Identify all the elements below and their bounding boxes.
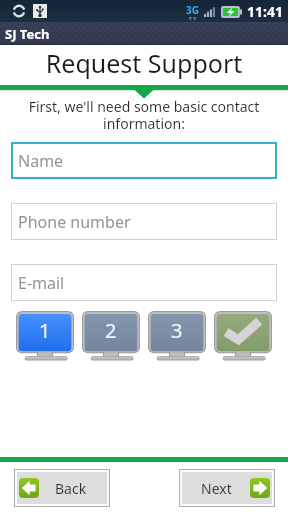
button[interactable]: Next [182,472,272,504]
button[interactable]: E-mail [11,264,277,301]
button[interactable]: Phone number [11,203,277,240]
staticText: Name [18,150,64,172]
staticText: 11:41 [247,2,283,21]
staticText: Request Support [0,46,288,80]
button[interactable]: Name [11,142,277,179]
staticText: 3G [186,3,199,17]
staticText: 1 [39,317,51,344]
staticText: Phone number [18,211,131,233]
other: Back [19,478,39,498]
button[interactable]: 3 [148,311,206,361]
staticText: Next [201,479,232,498]
button[interactable]: Done [214,311,272,361]
staticText: Back [55,479,87,498]
staticText: SJ Tech [5,25,50,43]
staticText: 2 [105,317,117,344]
staticText: E-mail [18,272,65,294]
staticText: First, we'll need some basic contact inf… [0,97,288,133]
other: Next [250,478,270,498]
staticText: 3 [171,317,183,344]
button[interactable]: Back [17,472,107,504]
button[interactable]: 2 [82,311,140,361]
button[interactable]: 1 [16,311,74,361]
